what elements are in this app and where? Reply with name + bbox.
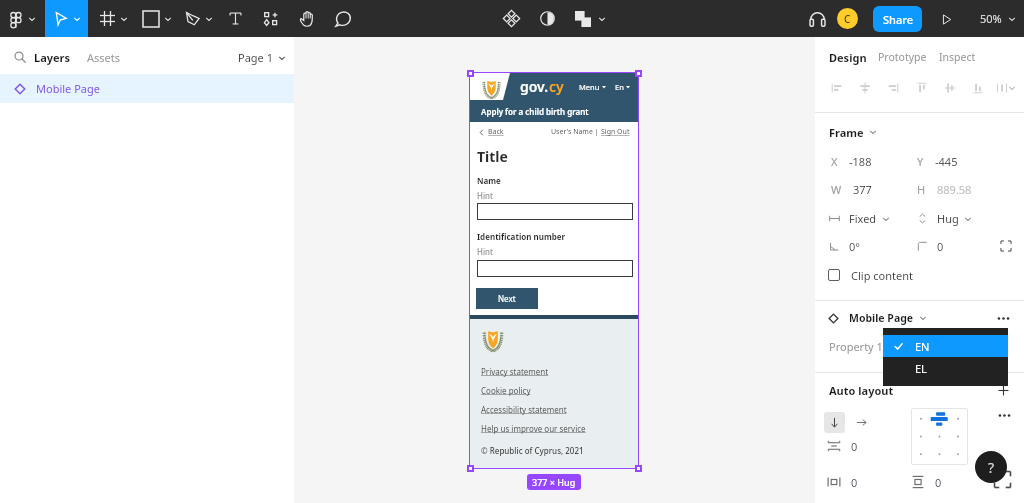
- staticText: EL: [915, 361, 927, 376]
- staticText: Frame: [829, 125, 864, 140]
- staticText: Apply for a child birth grant: [481, 106, 589, 117]
- button[interactable]: Layers: [34, 50, 71, 65]
- button[interactable]: Boolean ops: [566, 0, 614, 37]
- button[interactable]: Independent corners: [998, 238, 1014, 254]
- button[interactable]: Mobile Page: [0, 74, 294, 103]
- button[interactable]: EN: [883, 335, 1008, 357]
- staticText: ?: [988, 458, 995, 477]
- staticText: Design: [829, 50, 867, 65]
- staticText: EN: [915, 339, 930, 354]
- staticText: W: [831, 182, 842, 197]
- button[interactable]: Page 1: [238, 50, 286, 65]
- button[interactable]: Assets: [87, 50, 121, 65]
- staticText: 0: [851, 439, 858, 454]
- staticText: Share: [883, 12, 913, 27]
- staticText: Hint: [477, 246, 493, 257]
- button[interactable]: Text tool: [218, 0, 253, 37]
- button[interactable]: Align 2: [883, 78, 903, 98]
- staticText: Assets: [87, 50, 121, 65]
- button[interactable]: Hug: [917, 211, 972, 226]
- button[interactable]: Fixed: [829, 211, 890, 226]
- button[interactable]: Accessibility statement: [481, 404, 567, 415]
- button[interactable]: Design: [829, 50, 867, 65]
- button[interactable]: Shape tool: [135, 0, 180, 37]
- button[interactable]: Next: [476, 288, 538, 309]
- button[interactable]: Alignment grid: [911, 408, 968, 465]
- button[interactable]: Align 4: [940, 78, 960, 98]
- button[interactable]: Menu: [579, 82, 606, 92]
- staticText: Hint: [477, 190, 493, 201]
- button[interactable]: Distribute: [996, 82, 1016, 94]
- staticText: User's Name |: [551, 127, 599, 137]
- button[interactable]: Comment: [324, 0, 361, 37]
- staticText: Inspect: [939, 50, 976, 64]
- staticText: Property 1: [829, 339, 883, 354]
- staticText: Fixed: [849, 211, 877, 226]
- button[interactable]: Privacy statement: [481, 366, 549, 377]
- staticText: Accessibility statement: [481, 404, 567, 415]
- button[interactable]: Move tool: [45, 0, 88, 37]
- button[interactable]: Share: [873, 6, 922, 32]
- button[interactable]: Sign Out: [601, 127, 630, 137]
- button[interactable]: Horizontal layout: [851, 412, 872, 433]
- button[interactable]: Account: [837, 8, 858, 29]
- button[interactable]: Frame tool: [92, 0, 135, 37]
- staticText: 0: [935, 475, 942, 490]
- button[interactable]: [477, 203, 633, 220]
- staticText: gov.: [520, 77, 549, 96]
- button[interactable]: Resize panel: [993, 470, 1012, 489]
- button[interactable]: Help: [975, 451, 1007, 483]
- staticText: Prototype: [878, 50, 927, 64]
- button[interactable]: Present: [935, 8, 957, 30]
- button[interactable]: Audio: [803, 5, 831, 33]
- button[interactable]: En: [615, 82, 630, 92]
- button[interactable]: Figma menu: [0, 0, 45, 37]
- staticText: 0: [851, 475, 858, 490]
- button[interactable]: Prototype: [878, 50, 927, 64]
- staticText: -188: [849, 154, 872, 169]
- button[interactable]: Help us improve our service: [481, 423, 586, 434]
- button[interactable]: Back: [478, 127, 504, 137]
- staticText: Y: [917, 154, 924, 169]
- staticText: -445: [935, 154, 958, 169]
- staticText: 50%: [980, 11, 1002, 26]
- staticText: 0: [937, 239, 944, 254]
- button[interactable]: Vertical layout: [824, 412, 845, 433]
- staticText: Mobile Page: [36, 81, 100, 96]
- button[interactable]: Auto layout options: [995, 406, 1013, 424]
- button[interactable]: More options: [994, 309, 1012, 327]
- staticText: © Republic of Cyprus, 2021: [481, 445, 584, 456]
- button[interactable]: 50%: [978, 11, 1018, 26]
- staticText: En: [615, 82, 624, 92]
- button[interactable]: Plugins: [493, 0, 529, 37]
- button[interactable]: Pen tool: [180, 0, 218, 37]
- button[interactable]: Align 1: [855, 78, 875, 98]
- staticText: Help us improve our service: [481, 423, 586, 434]
- staticText: Name: [477, 175, 501, 186]
- staticText: 377 × Hug: [532, 476, 576, 488]
- staticText: Privacy statement: [481, 366, 549, 377]
- button[interactable]: Inspect: [939, 50, 976, 64]
- staticText: X: [831, 154, 838, 169]
- staticText: 889.58: [937, 182, 972, 197]
- button[interactable]: Hand tool: [289, 0, 324, 37]
- staticText: Mobile Page: [849, 311, 914, 325]
- button[interactable]: Contrast: [529, 0, 566, 37]
- button[interactable]: Components: [253, 0, 289, 37]
- button[interactable]: Align 3: [912, 78, 932, 98]
- button[interactable]: Align 5: [968, 78, 988, 98]
- staticText: 0°: [849, 239, 860, 254]
- button[interactable]: Clip content: [828, 265, 1024, 285]
- staticText: Page 1: [238, 50, 273, 65]
- staticText: 377: [853, 182, 872, 197]
- button[interactable]: [477, 260, 633, 277]
- staticText: Layers: [34, 50, 71, 65]
- button[interactable]: EL: [883, 357, 1008, 379]
- staticText: Title: [477, 147, 508, 166]
- button[interactable]: Align 0: [827, 78, 847, 98]
- button[interactable]: Cookie policy: [481, 385, 531, 396]
- staticText: Hug: [937, 211, 959, 226]
- staticText: cy: [549, 77, 564, 96]
- staticText: Auto layout: [829, 383, 894, 398]
- button[interactable]: Add auto layout: [994, 381, 1012, 399]
